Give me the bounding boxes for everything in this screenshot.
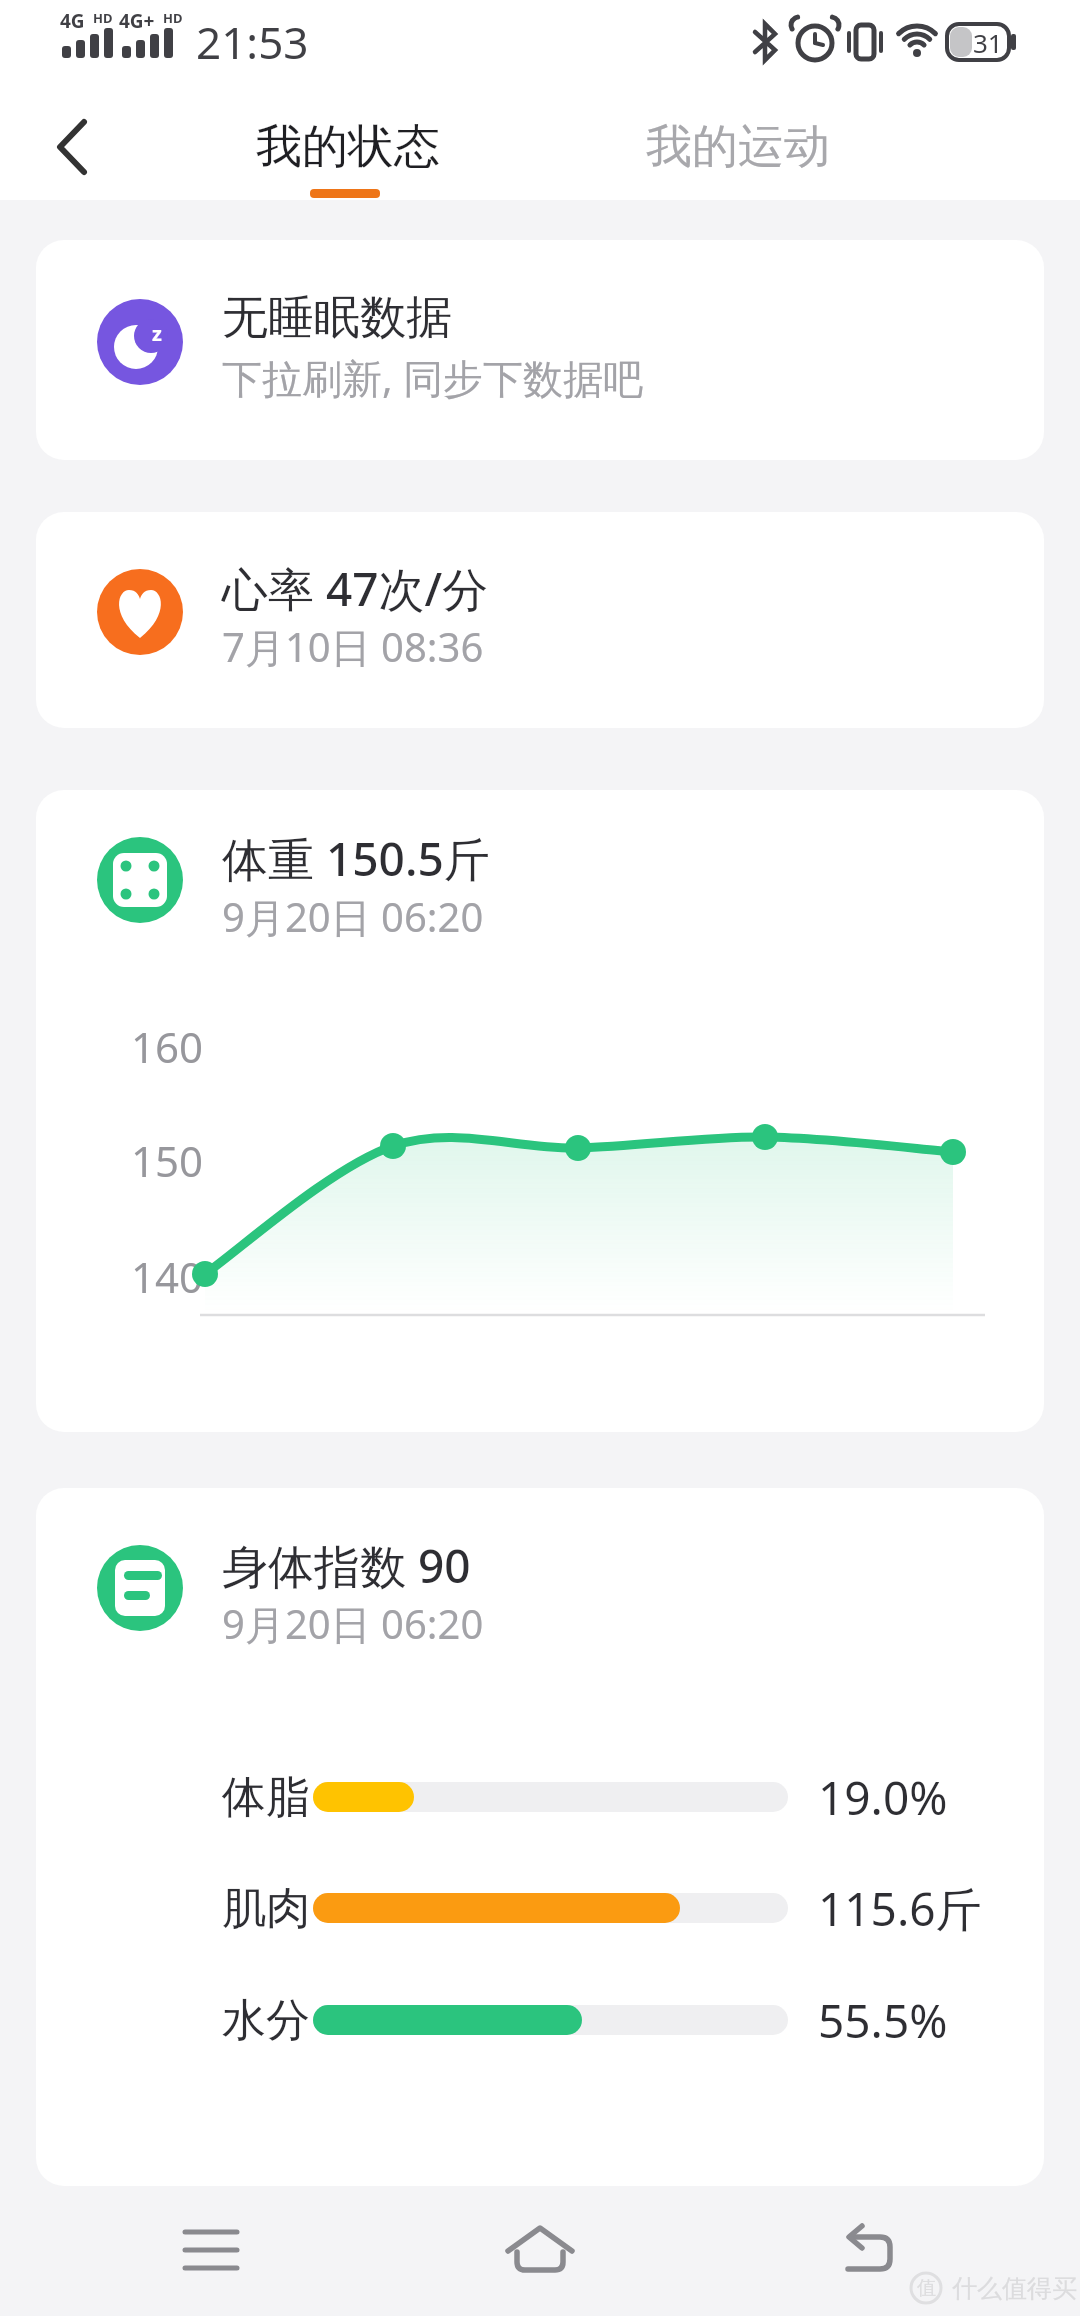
staticText: 身体指数 90 xyxy=(222,1534,471,1597)
staticText: 160 xyxy=(131,1018,204,1075)
staticText: 水分 xyxy=(222,1993,310,2048)
staticText: 31 xyxy=(973,25,1003,60)
staticText: 21:53 xyxy=(196,12,309,72)
staticText: 心率 47次/分 xyxy=(222,557,489,620)
staticText: 19.0% xyxy=(818,1766,948,1829)
staticText: z xyxy=(152,320,162,347)
staticText: 什么值得买 xyxy=(952,2273,1077,2304)
staticText: 115.6斤 xyxy=(818,1877,982,1940)
staticText: 体脂 xyxy=(222,1770,310,1825)
staticText: 肌肉 xyxy=(222,1881,310,1936)
staticText: HD xyxy=(163,9,183,27)
staticText: 7月10日 08:36 xyxy=(222,619,484,674)
staticText: HD xyxy=(93,9,113,27)
staticText: 150 xyxy=(131,1132,204,1189)
staticText: 140 xyxy=(131,1248,204,1305)
button[interactable]: 我的状态 xyxy=(250,115,445,179)
staticText: 无睡眠数据 xyxy=(222,289,452,347)
staticText: 我的运动 xyxy=(646,118,830,176)
staticText: 9月20日 06:20 xyxy=(222,1596,484,1651)
button[interactable] xyxy=(504,2215,576,2285)
button[interactable] xyxy=(175,2215,247,2285)
staticText: 我的状态 xyxy=(256,118,440,176)
button[interactable] xyxy=(834,2215,906,2285)
button[interactable] xyxy=(50,117,110,177)
button[interactable] xyxy=(36,512,1044,728)
button[interactable] xyxy=(36,240,1044,460)
staticText: 55.5% xyxy=(818,1989,948,2052)
button[interactable] xyxy=(36,1488,1044,2186)
staticText: 4G xyxy=(60,8,85,34)
staticText: 体重 150.5斤 xyxy=(222,827,490,890)
button[interactable]: 我的运动 xyxy=(640,115,835,179)
staticText: 值 xyxy=(917,2276,936,2300)
button[interactable] xyxy=(36,790,1044,1432)
staticText: 4G+ xyxy=(119,8,155,34)
staticText: 下拉刷新, 同步下数据吧 xyxy=(222,350,644,405)
staticText: 9月20日 06:20 xyxy=(222,889,484,944)
